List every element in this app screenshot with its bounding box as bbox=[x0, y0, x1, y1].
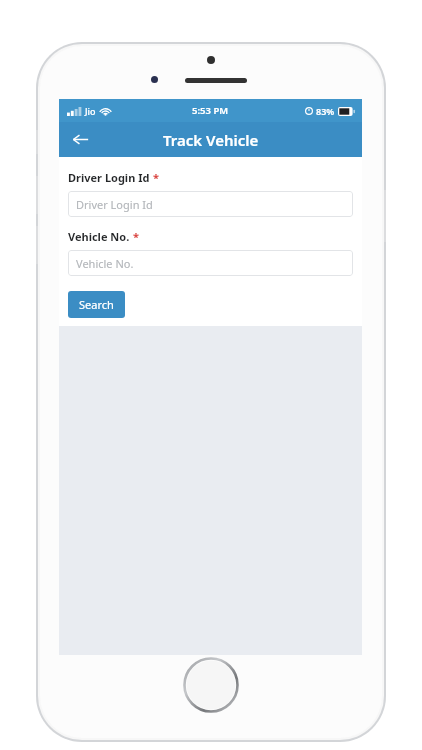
staticText: * bbox=[133, 229, 139, 244]
staticText: 83% bbox=[316, 105, 335, 117]
button[interactable]: Vehicle No. bbox=[68, 250, 353, 276]
staticText: Track Vehicle bbox=[163, 130, 259, 150]
staticText: Vehicle No. bbox=[76, 256, 134, 271]
staticText: 5:53 PM bbox=[192, 104, 229, 117]
button[interactable]: Back bbox=[59, 122, 101, 157]
button[interactable]: Home bbox=[184, 658, 238, 712]
staticText: Jio bbox=[85, 105, 96, 117]
staticText: Driver Login Id bbox=[68, 170, 150, 185]
staticText: Driver Login Id bbox=[76, 197, 153, 212]
button[interactable]: Driver Login Id bbox=[68, 191, 353, 217]
staticText: * bbox=[153, 170, 159, 185]
staticText: Search bbox=[79, 297, 114, 312]
button[interactable]: Search bbox=[68, 291, 125, 318]
staticText: Vehicle No. bbox=[68, 229, 130, 244]
